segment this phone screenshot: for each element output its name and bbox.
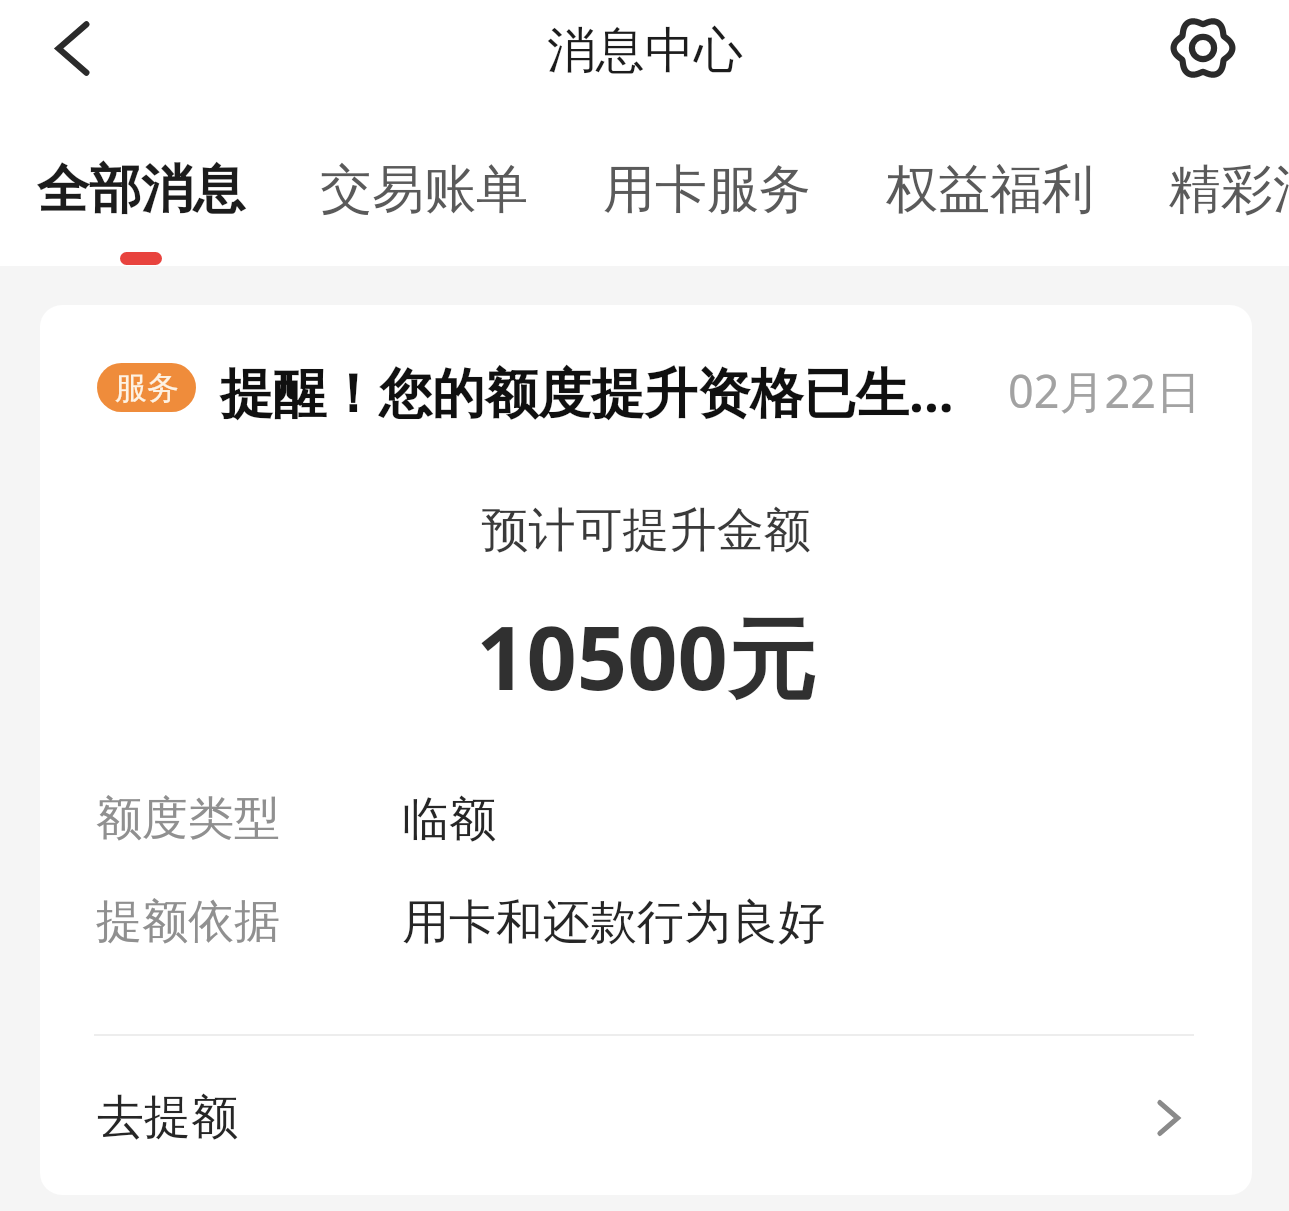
- button[interactable]: 精彩活动: [1169, 157, 1289, 266]
- button[interactable]: 去提额: [40, 1036, 1252, 1195]
- staticText: 服务: [115, 368, 179, 408]
- staticText: 临额: [402, 790, 496, 849]
- staticText: 额度类型: [96, 790, 280, 848]
- button[interactable]: 交易账单: [320, 157, 528, 266]
- staticText: 用卡和还款行为良好: [402, 893, 825, 952]
- staticText: 10500元: [40, 596, 1252, 716]
- staticText: 预计可提升金额: [40, 501, 1252, 560]
- staticText: 用卡服务: [603, 157, 811, 223]
- button[interactable]: Back: [32, 8, 112, 88]
- staticText: 提额依据: [96, 893, 280, 951]
- button[interactable]: 全部消息: [37, 157, 245, 266]
- button[interactable]: 权益福利: [886, 157, 1094, 266]
- staticText: 去提额: [97, 1088, 238, 1147]
- staticText: 精彩活动: [1169, 157, 1289, 223]
- staticText: 全部消息: [37, 157, 245, 223]
- button[interactable]: 服务: [40, 305, 1252, 1195]
- button[interactable]: Settings: [1163, 8, 1243, 88]
- staticText: 消息中心: [547, 20, 743, 82]
- staticText: 权益福利: [886, 157, 1094, 223]
- staticText: 02月22日: [1008, 360, 1201, 421]
- staticText: 提醒！您的额度提升资格已生...: [220, 355, 1020, 427]
- staticText: 交易账单: [320, 157, 528, 223]
- button[interactable]: 用卡服务: [603, 157, 811, 266]
